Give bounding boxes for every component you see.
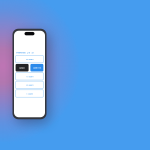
button[interactable]: Confirm — [30, 64, 43, 71]
staticText: 12:00pm — [25, 83, 33, 86]
button[interactable]: 10:00am — [16, 55, 43, 63]
staticText: Confirm — [33, 66, 41, 69]
button[interactable]: 12:00pm — [16, 81, 43, 89]
button[interactable]: 1:00pm — [16, 90, 43, 97]
button[interactable]: 11:00am — [16, 72, 43, 80]
button[interactable]: Cancel — [16, 64, 29, 71]
staticText: 1:00pm — [26, 92, 33, 95]
staticText: Wednesday, Jul 23 — [16, 51, 34, 54]
staticText: 11:00am — [25, 75, 33, 78]
staticText: 10:00am — [25, 57, 33, 61]
staticText: Cancel — [19, 66, 25, 69]
